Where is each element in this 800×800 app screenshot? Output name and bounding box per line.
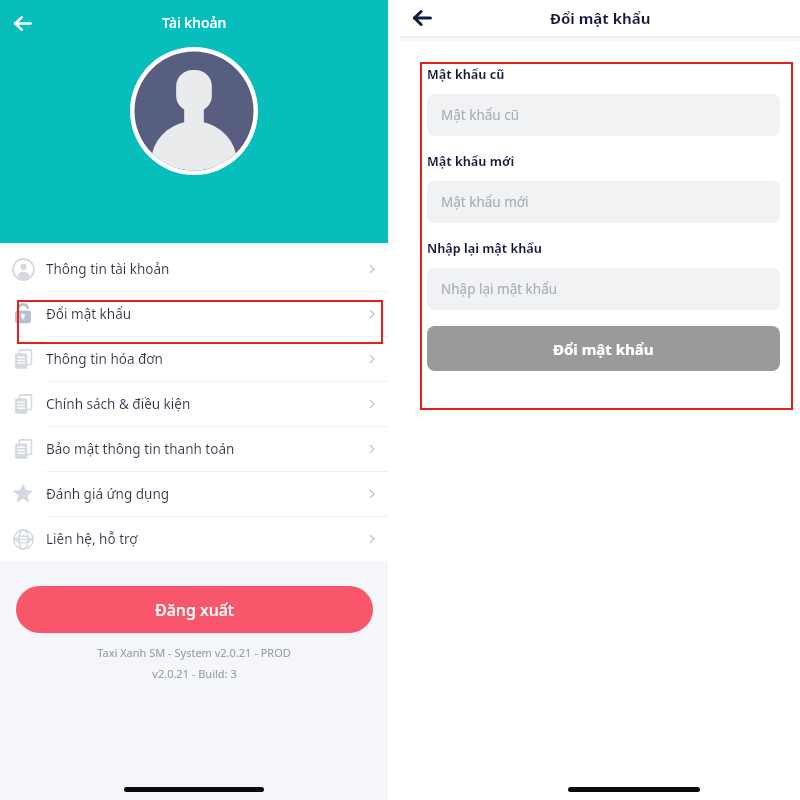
staticText: Đánh giá ứng dụng: [46, 485, 170, 503]
staticText: Đăng xuất: [155, 599, 234, 621]
staticText: Thông tin tài khoản: [46, 260, 170, 278]
button[interactable]: Mật khẩu mới: [427, 181, 780, 223]
staticText: Thông tin hóa đơn: [46, 350, 163, 368]
staticText: Tài khoản: [162, 13, 227, 32]
button[interactable]: Đổi mật khẩu: [427, 326, 780, 371]
staticText: Mật khẩu mới: [441, 193, 529, 211]
staticText: Mật khẩu mới: [427, 153, 515, 170]
button[interactable]: Thông tin tài khoản: [0, 247, 388, 291]
button[interactable]: Liên hệ, hỗ trợ: [0, 517, 388, 561]
staticText: Liên hệ, hỗ trợ: [46, 530, 138, 548]
button[interactable]: Đánh giá ứng dụng: [0, 472, 388, 516]
button[interactable]: Back: [400, 0, 444, 36]
button[interactable]: Back: [0, 1, 44, 45]
staticText: Mật khẩu cũ: [441, 106, 520, 124]
staticText: Đổi mật khẩu: [550, 8, 651, 28]
button[interactable]: Đổi mật khẩu: [0, 292, 388, 336]
staticText: Bảo mật thông tin thanh toán: [46, 440, 235, 458]
button[interactable]: Thông tin hóa đơn: [0, 337, 388, 381]
staticText: Mật khẩu cũ: [427, 66, 505, 83]
staticText: Taxi Xanh SM - System v2.0.21 - PROD: [97, 645, 291, 660]
staticText: Nhập lại mật khẩu: [441, 280, 558, 298]
staticText: Đổi mật khẩu: [553, 339, 654, 359]
button[interactable]: Chính sách & điều kiện: [0, 382, 388, 426]
button[interactable]: Bảo mật thông tin thanh toán: [0, 427, 388, 471]
button[interactable]: Mật khẩu cũ: [427, 94, 780, 136]
button[interactable]: Đăng xuất: [16, 586, 373, 633]
button[interactable]: Nhập lại mật khẩu: [427, 268, 780, 310]
staticText: Chính sách & điều kiện: [46, 395, 191, 413]
staticText: v2.0.21 - Build: 3: [152, 666, 237, 681]
staticText: Nhập lại mật khẩu: [427, 240, 542, 257]
staticText: Đổi mật khẩu: [46, 305, 132, 323]
